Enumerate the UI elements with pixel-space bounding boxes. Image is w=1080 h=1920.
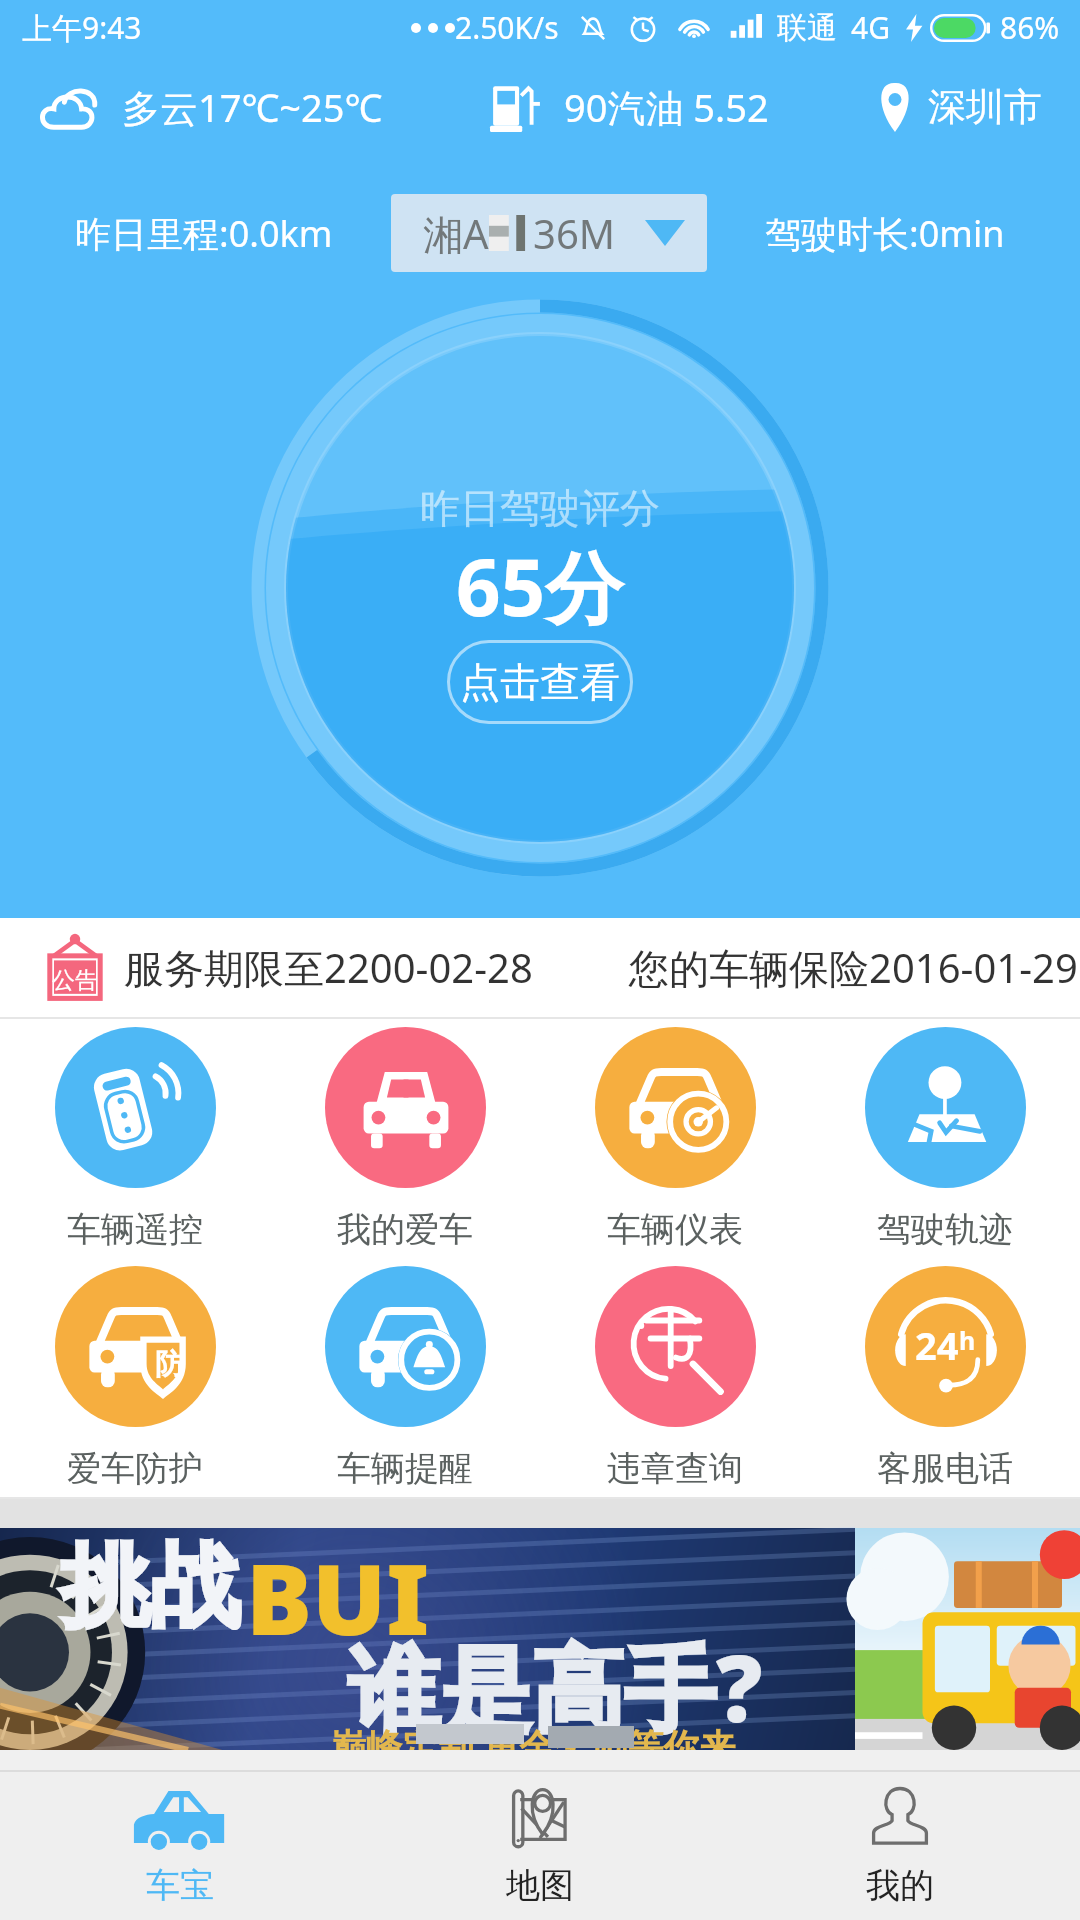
staticText: 车辆提醒 [337,1447,473,1490]
staticText: 地图 [506,1864,574,1907]
staticText: 昨日驾驶评分 [420,483,660,533]
staticText: 湘A [423,206,489,261]
staticText: h [959,1323,976,1357]
button[interactable]: 驾驶轨迹 [810,1019,1080,1258]
staticText: 您的车辆保险2016-01-29 [629,940,1078,995]
staticText: 违章查询 [607,1447,743,1490]
staticText: 昨日里程:0.0km [75,209,333,258]
staticText: BUI [246,1530,430,1663]
button[interactable]: 公告 [0,918,1080,1017]
staticText: 4G [851,7,890,48]
staticText: 我的爱车 [337,1208,473,1251]
staticText: 上午9:43 [22,7,142,48]
staticText: 爱车防护 [67,1447,203,1490]
staticText: 车宝 [146,1864,214,1907]
staticText: 公告 [52,966,98,995]
staticText: 车辆仪表 [607,1208,743,1251]
staticText: 巅峰定制 重金奖励等你来 [330,1722,736,1750]
button[interactable]: 防 [0,1258,270,1497]
staticText: 86% [1000,7,1060,48]
staticText: 驾驶轨迹 [877,1208,1013,1251]
staticText: 挑战 [60,1530,240,1643]
button[interactable]: 我的爱车 [270,1019,540,1258]
button[interactable]: 24 [810,1258,1080,1497]
button[interactable]: 昨日驾驶评分 [252,300,828,876]
staticText: 谁是高手? [348,1624,763,1750]
staticText: 服务期限至2200-02-28 [124,940,533,995]
staticText: 90汽油 5.52 [564,81,769,133]
button[interactable]: Advertisement banner [0,1528,1080,1750]
button[interactable]: 点击查看 [447,640,633,724]
button[interactable]: 我的 [720,1772,1080,1920]
button[interactable]: 车辆遥控 [0,1019,270,1258]
staticText: 车辆遥控 [67,1208,203,1251]
button[interactable]: 湘A [391,194,707,272]
staticText: 我的 [866,1864,934,1907]
staticText: 点击查看 [460,657,620,707]
staticText: 驾驶时长:0min [765,209,1005,258]
staticText: 65分 [456,533,624,640]
staticText: 36M [533,206,616,260]
button[interactable]: 车辆仪表 [540,1019,810,1258]
button[interactable]: 地图 [360,1772,720,1920]
staticText: 防 [155,1346,184,1383]
staticText: 24 [915,1319,959,1371]
button[interactable]: 车辆提醒 [270,1258,540,1497]
button[interactable]: 违章查询 [540,1258,810,1497]
staticText: 多云17℃~25℃ [122,81,383,133]
button[interactable]: 车宝 [0,1772,360,1920]
staticText: 联通 [777,9,837,47]
staticText: 深圳市 [928,83,1042,131]
staticText: 2.50K/s [455,7,559,48]
staticText: 客服电话 [877,1447,1013,1490]
